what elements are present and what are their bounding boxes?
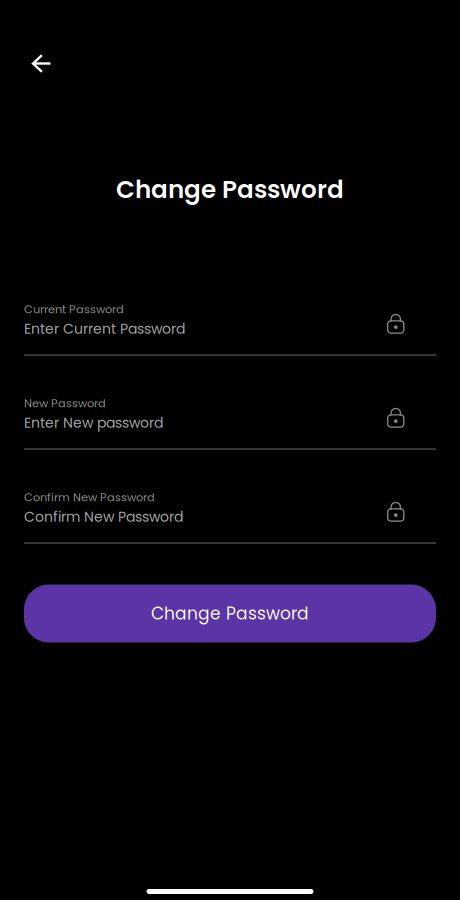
staticText: Enter Current Password (24, 319, 185, 339)
button[interactable]: Current Password (24, 299, 436, 393)
staticText: Current Password (24, 301, 124, 317)
button[interactable]: Back (19, 41, 63, 85)
button[interactable]: New Password (24, 393, 436, 487)
staticText: Enter New password (24, 413, 163, 433)
staticText: Confirm New Password (24, 489, 155, 505)
button[interactable]: Change Password (24, 584, 436, 642)
staticText: New Password (24, 395, 106, 411)
button[interactable]: Confirm New Password (24, 487, 436, 581)
staticText: Change Password (151, 602, 309, 625)
staticText: Confirm New Password (24, 507, 183, 527)
staticText: Change Password (116, 172, 344, 206)
